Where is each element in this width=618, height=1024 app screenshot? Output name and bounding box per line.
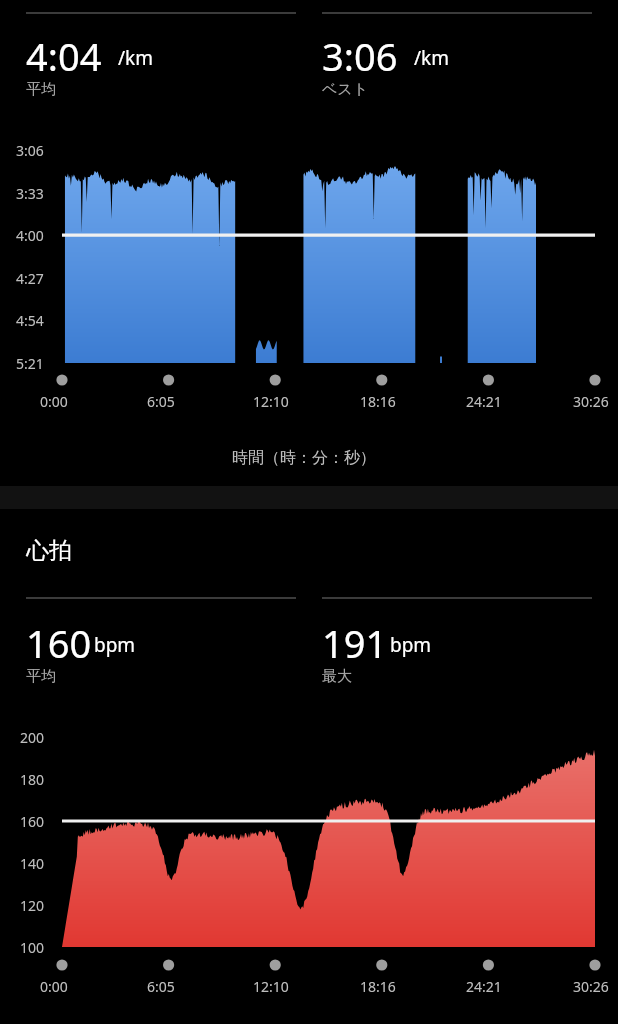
staticText: 30:26 (573, 392, 609, 411)
staticText: bpm (390, 632, 432, 658)
staticText: 5:21 (16, 354, 44, 373)
staticText: 18:16 (360, 392, 396, 411)
staticText: 24:21 (466, 392, 502, 411)
staticText: 30:26 (573, 977, 609, 996)
staticText: 200 (20, 728, 45, 747)
staticText: 0:00 (40, 977, 68, 996)
staticText: 3:06 (322, 30, 398, 82)
staticText: 18:16 (360, 977, 396, 996)
staticText: /km (118, 45, 153, 71)
button[interactable] (322, 30, 592, 100)
staticText: 12:10 (253, 392, 289, 411)
staticText: 12:10 (253, 977, 289, 996)
staticText: 3:33 (16, 184, 44, 203)
staticText: ベスト (322, 80, 369, 99)
staticText: 140 (20, 854, 45, 873)
staticText: 6:05 (147, 392, 175, 411)
button[interactable] (26, 30, 296, 100)
staticText: 0:00 (40, 392, 68, 411)
staticText: 160 (26, 617, 92, 669)
staticText: 100 (20, 938, 45, 957)
staticText: bpm (94, 632, 136, 658)
staticText: 6:05 (147, 977, 175, 996)
staticText: 最大 (322, 667, 352, 686)
staticText: 3:06 (16, 141, 44, 160)
button[interactable] (26, 617, 296, 687)
staticText: 160 (20, 812, 45, 831)
staticText: 180 (20, 770, 45, 789)
staticText: 4:27 (16, 269, 44, 288)
staticText: 24:21 (466, 977, 502, 996)
staticText: 4:04 (26, 30, 102, 82)
staticText: 平均 (26, 80, 56, 99)
staticText: 時間（時：分：秒） (232, 448, 376, 468)
staticText: /km (414, 45, 449, 71)
staticText: 4:54 (16, 311, 44, 330)
staticText: 191 (322, 617, 388, 669)
staticText: 平均 (26, 667, 56, 686)
staticText: 4:00 (16, 226, 44, 245)
staticText: 心拍 (26, 536, 72, 565)
button[interactable] (322, 617, 592, 687)
staticText: 120 (20, 896, 45, 915)
